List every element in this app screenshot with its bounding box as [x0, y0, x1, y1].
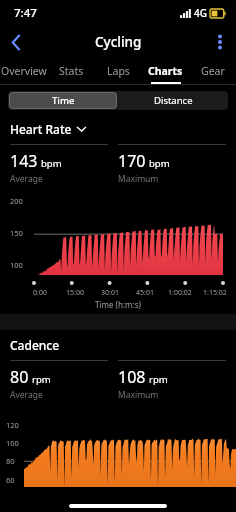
- staticText: 4G: [194, 6, 207, 20]
- staticText: bpm: [149, 157, 170, 170]
- staticText: 60: [6, 475, 15, 485]
- staticText: bpm: [41, 157, 62, 170]
- staticText: 1:00:02: [168, 288, 192, 298]
- staticText: Distance: [154, 94, 193, 107]
- staticText: Charts: [148, 64, 183, 78]
- staticText: 7:47: [14, 5, 37, 21]
- staticText: 45:01: [136, 288, 154, 298]
- staticText: rpm: [32, 373, 51, 386]
- button[interactable]: Cadence: [10, 336, 226, 354]
- staticText: Average: [10, 389, 43, 401]
- staticText: 1:15:02: [203, 288, 227, 298]
- button[interactable]: Time: [9, 92, 117, 109]
- staticText: 143: [10, 150, 38, 172]
- button[interactable]: Overview: [0, 58, 48, 84]
- staticText: 108: [118, 366, 146, 388]
- staticText: 0:00: [33, 288, 47, 298]
- button[interactable]: Back: [0, 26, 32, 58]
- staticText: Gear: [201, 64, 225, 78]
- staticText: Cadence: [10, 337, 60, 353]
- staticText: 150: [10, 228, 23, 238]
- staticText: 30:01: [101, 288, 119, 298]
- staticText: Maximum: [118, 173, 159, 185]
- button[interactable]: Laps: [95, 58, 142, 84]
- staticText: Time: [52, 94, 75, 107]
- staticText: 120: [6, 420, 19, 430]
- staticText: Laps: [107, 64, 130, 78]
- staticText: Heart Rate: [10, 121, 72, 137]
- button[interactable]: More options: [204, 26, 236, 58]
- button[interactable]: Heart Rate: [10, 120, 226, 138]
- staticText: rpm: [149, 373, 168, 386]
- staticText: 100: [6, 438, 19, 448]
- staticText: Stats: [59, 64, 84, 78]
- staticText: 80: [6, 456, 15, 466]
- staticText: Time (h:m:s): [95, 299, 141, 310]
- staticText: 200: [10, 196, 23, 206]
- button[interactable]: Stats: [48, 58, 95, 84]
- button[interactable]: Charts: [142, 58, 189, 84]
- staticText: 100: [10, 260, 23, 270]
- staticText: Maximum: [118, 389, 159, 401]
- staticText: 170: [118, 150, 146, 172]
- staticText: Overview: [1, 64, 47, 78]
- staticText: 15:00: [66, 288, 84, 298]
- button[interactable]: Distance: [118, 91, 228, 110]
- button[interactable]: Gear: [189, 58, 236, 84]
- staticText: 80: [10, 366, 29, 388]
- staticText: Average: [10, 173, 43, 185]
- staticText: Cycling: [95, 33, 142, 51]
